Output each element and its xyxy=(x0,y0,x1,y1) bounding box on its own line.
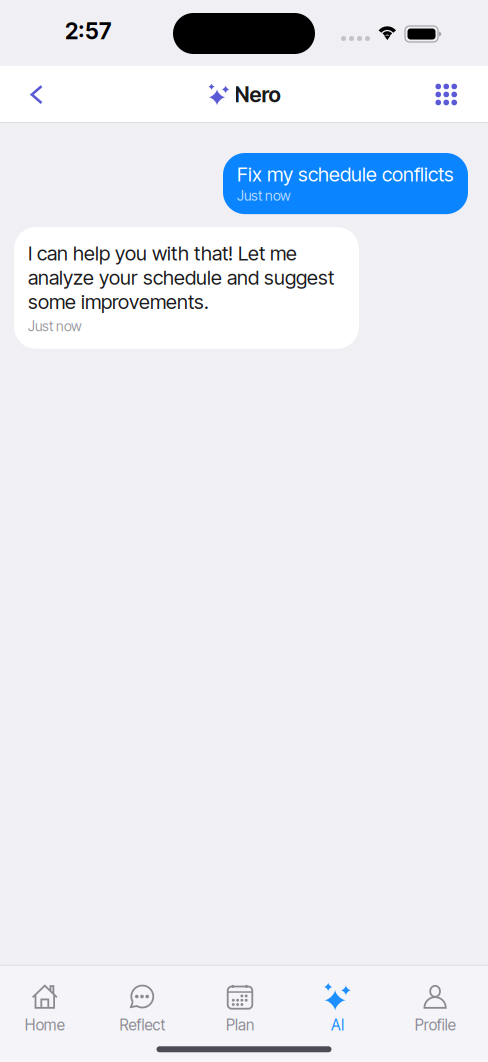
staticText: Just now xyxy=(28,318,82,335)
staticText: Fix my schedule conflicts xyxy=(237,162,454,186)
staticText: 2:57 xyxy=(65,17,111,45)
staticText: I can help you with that! Let me analyze… xyxy=(28,241,334,314)
button[interactable]: AI xyxy=(289,966,386,1046)
staticText: Home xyxy=(25,1016,65,1034)
staticText: AI xyxy=(331,1016,344,1034)
button[interactable]: Reflect xyxy=(94,966,191,1046)
staticText: Reflect xyxy=(119,1016,165,1034)
button[interactable]: Home xyxy=(0,966,94,1046)
staticText: Profile xyxy=(415,1016,456,1034)
staticText: Plan xyxy=(226,1016,254,1034)
button[interactable]: Back xyxy=(0,66,65,123)
button[interactable]: Plan xyxy=(191,966,289,1046)
button[interactable]: Profile xyxy=(386,966,484,1046)
staticText: Nero xyxy=(234,82,280,107)
staticText: Just now xyxy=(237,187,291,204)
button[interactable]: Apps xyxy=(414,66,488,123)
